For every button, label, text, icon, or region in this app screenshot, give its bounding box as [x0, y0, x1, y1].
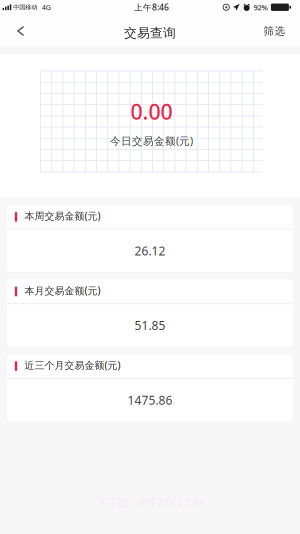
button[interactable]: 返回 [0, 22, 36, 44]
staticText: 1475.86 [127, 392, 172, 408]
staticText: 本月交易金额(元) [25, 284, 101, 297]
staticText: 26.12 [134, 243, 165, 259]
button[interactable]: 筛选 [251, 20, 300, 46]
staticText: 近三个月交易金额(元) [25, 358, 121, 372]
staticText: 交易查询 [124, 25, 176, 41]
staticText: 4G [42, 2, 51, 12]
staticText: 飞下载 · BYFZXY.COM [96, 495, 204, 510]
staticText: 今日交易金额(元) [110, 134, 193, 148]
staticText: 筛选 [263, 24, 285, 38]
staticText: 92% [253, 2, 267, 12]
staticText: 中国移动 [13, 3, 37, 11]
staticText: 本周交易金额(元) [25, 209, 101, 223]
staticText: 51.85 [134, 317, 165, 333]
staticText: 上午8:46 [134, 1, 169, 13]
staticText: 0.00 [130, 97, 172, 126]
